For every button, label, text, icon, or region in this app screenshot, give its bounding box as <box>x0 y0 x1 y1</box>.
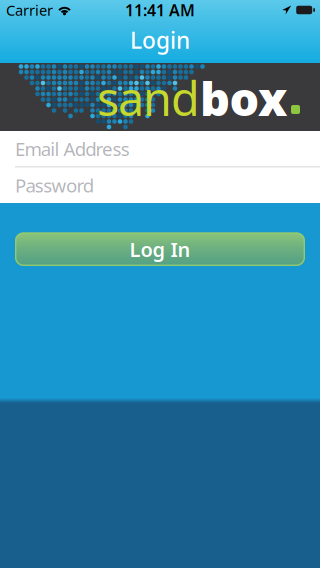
staticText: 11:41 AM <box>125 0 195 21</box>
staticText: Log In <box>129 236 190 263</box>
staticText: Password <box>15 173 94 198</box>
staticText: Carrier <box>6 0 53 20</box>
staticText: sand <box>97 67 200 129</box>
button[interactable]: Password <box>0 167 320 203</box>
button[interactable]: Log In <box>15 232 305 266</box>
button[interactable]: Email Address <box>0 131 320 166</box>
staticText: Email Address <box>15 136 130 161</box>
staticText: Login <box>130 25 190 55</box>
staticText: box <box>200 67 287 129</box>
